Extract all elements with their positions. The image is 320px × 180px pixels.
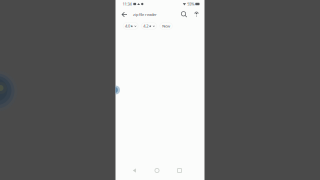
staticText: zip file reader xyxy=(133,12,157,17)
button[interactable]: Back xyxy=(129,165,139,175)
button[interactable]: New xyxy=(160,23,172,29)
staticText: 11:34 xyxy=(122,1,131,7)
staticText: 4.0 xyxy=(125,23,130,29)
staticText: New xyxy=(162,23,170,29)
staticText: 93% xyxy=(187,1,194,7)
button[interactable]: Home xyxy=(152,165,162,175)
button[interactable]: Search xyxy=(179,9,188,20)
button[interactable]: 4.0 xyxy=(123,23,138,29)
button[interactable]: 4.2 xyxy=(141,23,157,29)
staticText: 4.2 xyxy=(143,23,148,29)
button[interactable]: Voice search xyxy=(192,9,200,20)
button[interactable]: Back xyxy=(119,9,130,20)
button[interactable]: Recent apps xyxy=(174,165,184,175)
